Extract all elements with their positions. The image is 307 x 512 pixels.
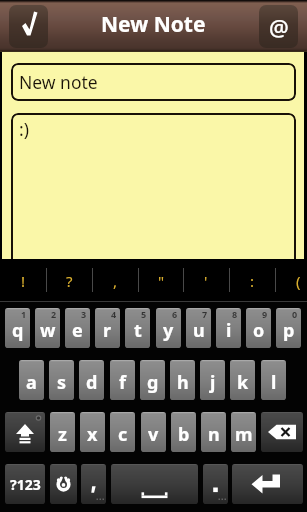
button[interactable]: c [110,412,135,452]
staticText: ' [204,271,208,291]
staticText: :) [19,117,29,141]
staticText: 0 [292,308,298,320]
button[interactable]: Comma [81,464,106,504]
button[interactable]: x [80,412,105,452]
button[interactable]: ? [46,259,92,302]
button[interactable]: v [141,412,166,452]
button[interactable]: o [246,308,271,348]
button[interactable]: s [49,360,74,400]
staticText: ( [296,271,301,291]
button[interactable]: b [171,412,196,452]
button[interactable]: ! [0,259,46,302]
button[interactable]: Insert at symbol [259,5,298,48]
staticText: p [283,318,295,343]
button[interactable]: z [50,412,75,452]
button[interactable]: Enter [232,464,303,504]
staticText: " [158,271,165,291]
button[interactable]: Space [111,464,198,504]
button[interactable]: r [95,308,120,348]
button[interactable]: " [138,259,184,302]
button[interactable]: d [79,360,104,400]
button[interactable]: a [19,360,44,400]
staticText: a [26,370,37,395]
staticText: y [163,318,174,343]
button[interactable]: n [201,412,226,452]
button[interactable]: , [92,259,138,302]
staticText: d [86,370,98,395]
button[interactable]: ?123 [5,464,45,504]
button[interactable]: Period [203,464,228,504]
staticText: e [72,318,83,343]
staticText: m [235,422,253,447]
staticText: j [210,370,216,395]
staticText: o [253,318,265,343]
staticText: New note [19,70,98,94]
staticText: b [178,422,190,447]
staticText: , [113,271,118,291]
staticText: z [58,422,67,447]
button[interactable]: j [200,360,225,400]
staticText: v [148,422,159,447]
button[interactable]: p [276,308,301,348]
staticText: 6 [172,308,178,320]
staticText: t [134,318,142,343]
staticText: h [177,370,189,395]
staticText: c [118,422,128,447]
staticText: ? [66,271,73,291]
button[interactable]: k [230,360,255,400]
staticText: u [193,318,205,343]
button[interactable]: l [261,360,286,400]
staticText: q [12,318,24,343]
staticText: l [271,370,277,395]
staticText: 2 [51,308,57,320]
button[interactable]: ' [183,259,229,302]
button[interactable]: q [5,308,30,348]
button[interactable]: m [231,412,256,452]
staticText: x [87,422,98,447]
staticText: 5 [141,308,147,320]
button[interactable]: i [216,308,241,348]
staticText: r [103,318,112,343]
button[interactable]: e [65,308,90,348]
button[interactable]: : [229,259,275,302]
button[interactable]: g [140,360,165,400]
staticText: 9 [262,308,268,320]
button[interactable]: t [125,308,150,348]
button[interactable]: h [170,360,195,400]
staticText: : [250,271,255,291]
button[interactable]: :) [11,113,296,283]
staticText: s [57,370,67,395]
button[interactable]: ( [275,259,307,302]
staticText: n [208,422,220,447]
button[interactable]: u [186,308,211,348]
staticText: ! [21,271,26,291]
staticText: 7 [202,308,208,320]
staticText: 8 [232,308,238,320]
button[interactable]: Delete [261,412,303,452]
staticText: i [226,318,232,343]
button[interactable]: f [110,360,135,400]
button[interactable]: Shift [5,412,45,452]
staticText: k [237,370,249,395]
button[interactable]: w [35,308,60,348]
staticText: ?123 [10,475,41,494]
staticText: 4 [111,308,117,320]
staticText: 3 [81,308,87,320]
staticText: w [40,318,56,343]
button[interactable]: New note [11,63,296,101]
button[interactable]: y [156,308,181,348]
staticText: g [147,370,159,395]
staticText: 1 [21,308,27,320]
staticText: New Note [101,10,206,39]
button[interactable]: Input method [50,464,77,504]
button[interactable]: Save note [9,5,48,48]
staticText: f [119,370,126,395]
staticText: @ [269,12,289,42]
